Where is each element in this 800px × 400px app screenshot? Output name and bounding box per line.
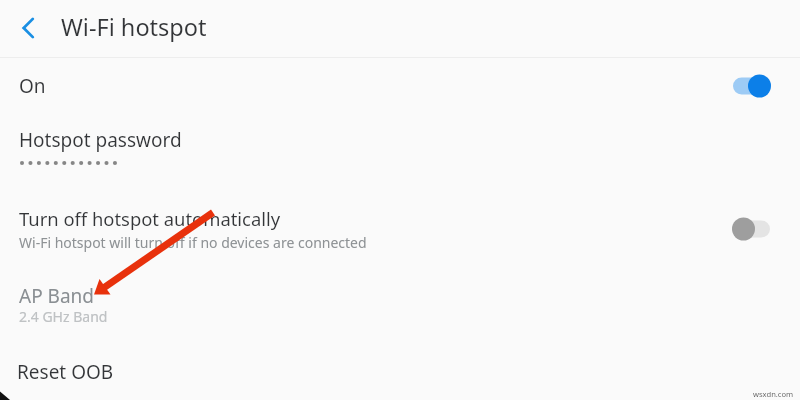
staticText: Reset OOB [17,359,114,385]
button[interactable]: On [0,58,800,115]
staticText: wsxdn.com [753,389,794,399]
staticText: Wi-Fi hotspot will turn off if no device… [19,233,367,252]
staticText: 2.4 GHz Band [19,307,108,326]
button[interactable]: AP Band [0,268,800,336]
button[interactable]: Turn off hotspot automatically [0,192,800,264]
staticText: Turn off hotspot automatically [19,206,281,231]
button[interactable]: Back [10,10,46,46]
staticText: Wi-Fi hotspot [61,11,207,43]
button[interactable]: Wi-Fi hotspot on [729,67,785,103]
staticText: AP Band [19,283,95,309]
button[interactable]: Turn off hotspot automatically, off [728,210,784,246]
staticText: Hotspot password [19,127,182,153]
button[interactable]: Reset OOB [0,345,800,400]
staticText: On [19,73,46,99]
button[interactable]: Hotspot password [0,117,800,190]
